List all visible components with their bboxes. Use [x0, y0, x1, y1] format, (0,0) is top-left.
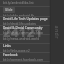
staticText: bit.ly/connect-facebook-com — [3, 58, 44, 61]
staticText: bit.ly/links-page-v2 — [3, 49, 30, 52]
button[interactable]: Links — [0, 44, 50, 52]
staticText: 24121 — [3, 23, 43, 41]
button[interactable]: Glide — [0, 7, 50, 16]
staticText: Droid Life Tech Updates page — [3, 17, 48, 21]
button[interactable]: Droid Life Tech Updates page — [0, 17, 50, 25]
button[interactable]: bit.ly/androidlibs-list — [0, 0, 50, 6]
button[interactable]: bit.ly/news-android-world — [0, 35, 50, 43]
staticText: Droid & Droid Community Blog — [3, 26, 49, 30]
staticText: Links — [3, 44, 11, 48]
staticText: bit.ly/glide-android-lib — [3, 14, 35, 16]
staticText: bit.ly/droid-life-updates — [3, 22, 37, 25]
other: androidpub — [50, 0, 64, 64]
staticText: bit.ly/androidlibs-list — [3, 1, 34, 5]
button[interactable]: Facebook — [0, 53, 50, 61]
staticText: Facebook — [3, 53, 18, 57]
staticText: bit.ly/droid-community-blog — [3, 31, 43, 34]
staticText: bit.ly/news-android-world — [3, 37, 40, 41]
staticText: androidpub — [53, 25, 60, 39]
staticText: Glide — [5, 8, 13, 12]
button[interactable]: Droid & Droid Community Blog — [0, 26, 50, 34]
